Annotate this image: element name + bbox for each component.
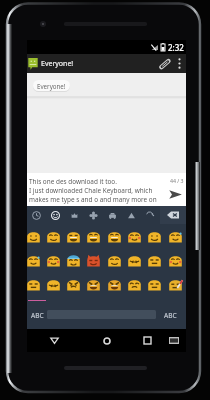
button[interactable]: Emoji: [43, 248, 63, 272]
button[interactable]: Backspace: [160, 206, 186, 224]
staticText: makes me type s and o and many more on: [29, 195, 157, 204]
button[interactable]: Emoji: [144, 272, 164, 296]
button[interactable]: Recents: [132, 329, 162, 352]
staticText: ABC: [164, 311, 177, 320]
button[interactable]: Emoji: [83, 224, 103, 248]
button[interactable]: ABC: [159, 307, 181, 323]
button[interactable]: Emoji: [124, 248, 144, 272]
button[interactable]: Emoji: [104, 272, 124, 296]
button[interactable]: Emoji: [63, 224, 83, 248]
button[interactable]: Send: [164, 186, 186, 202]
button[interactable]: Emoji: [104, 224, 124, 248]
button[interactable]: Back: [27, 329, 82, 352]
button[interactable]: Attach: [156, 54, 173, 73]
button[interactable]: Symbols: [122, 206, 141, 224]
button[interactable]: Emoji: [63, 248, 83, 272]
staticText: This one des download it too.: [29, 177, 117, 186]
staticText: 2:32: [168, 42, 184, 53]
button[interactable]: Emoji: [144, 248, 164, 272]
button[interactable]: Travel: [103, 206, 122, 224]
button[interactable]: Recent: [27, 206, 46, 224]
button[interactable]: Emoji: [104, 248, 124, 272]
button[interactable]: Conversation Everyone!: [27, 57, 78, 70]
button[interactable]: More options: [173, 54, 186, 73]
button[interactable]: Emoji: [43, 224, 63, 248]
staticText: Everyone!: [41, 59, 74, 69]
button[interactable]: Home: [82, 329, 132, 352]
button[interactable]: Emoji: [43, 272, 63, 296]
button[interactable]: Emoji: [124, 272, 144, 296]
button[interactable]: Emoji: [83, 272, 103, 296]
button[interactable]: Emoji: [124, 224, 144, 248]
button[interactable]: Smileys: [46, 206, 65, 224]
button[interactable]: Switch keyboard: [162, 329, 186, 352]
button[interactable]: Emoji: [23, 272, 43, 296]
button[interactable]: Emoticons: [141, 206, 160, 224]
button[interactable]: Emoji: [144, 224, 164, 248]
button[interactable]: Emoji: [63, 272, 83, 296]
button[interactable]: Food: [84, 206, 103, 224]
staticText: 44 / 3: [170, 177, 184, 184]
button[interactable]: Emoji: [165, 224, 185, 248]
button[interactable]: Emoji: [83, 248, 103, 272]
staticText: ABC: [31, 311, 44, 320]
button[interactable]: ABC: [27, 307, 47, 323]
button[interactable]: Emoji: [23, 224, 43, 248]
staticText: I just downloaded Chale Keyboard, which: [29, 186, 153, 195]
button[interactable]: Emoji: [165, 248, 185, 272]
button[interactable]: Emoji: [23, 248, 43, 272]
button[interactable]: Everyone!: [33, 80, 70, 91]
button[interactable]: Emoji: [165, 272, 185, 296]
staticText: Everyone!: [37, 82, 66, 90]
button[interactable]: Animals: [65, 206, 84, 224]
